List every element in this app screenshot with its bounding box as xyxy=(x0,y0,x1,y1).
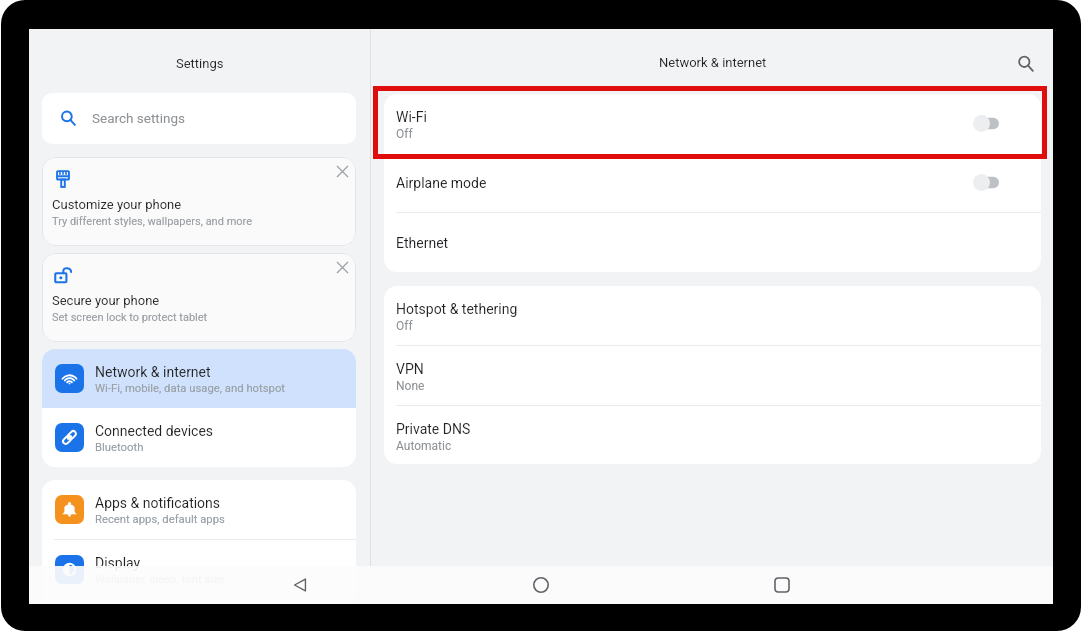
button[interactable]: Airplane mode xyxy=(384,153,1041,212)
staticText: Wi-Fi, mobile, data usage, and hotspot xyxy=(95,382,286,395)
button[interactable]: Connected devices xyxy=(42,408,356,467)
button[interactable]: Private DNS xyxy=(384,406,1041,464)
staticText: VPN xyxy=(396,361,424,377)
staticText: Search settings xyxy=(92,110,186,126)
button[interactable]: Network & internet xyxy=(42,349,356,408)
staticText: Apps & notifications xyxy=(95,495,221,511)
staticText: Try different styles, wallpapers, and mo… xyxy=(52,215,253,228)
staticText: Off xyxy=(396,127,413,141)
button[interactable]: Home xyxy=(521,566,561,604)
button[interactable]: Secure your phone xyxy=(42,253,356,342)
button[interactable]: Back xyxy=(280,566,320,604)
staticText: Set screen lock to protect tablet xyxy=(52,311,208,324)
button[interactable]: Display xyxy=(42,540,356,599)
staticText: Connected devices xyxy=(95,423,214,439)
staticText: Network & internet xyxy=(659,55,767,70)
staticText: Customize your phone xyxy=(52,197,182,212)
button[interactable]: Customize your phone xyxy=(42,157,356,246)
button[interactable]: Dismiss xyxy=(330,255,354,279)
button[interactable]: Search xyxy=(1008,46,1042,80)
button[interactable]: Hotspot & tethering xyxy=(384,286,1041,345)
button[interactable]: Wi-Fi xyxy=(384,94,1041,153)
button[interactable]: VPN xyxy=(384,346,1041,405)
staticText: Hotspot & tethering xyxy=(396,301,518,317)
button[interactable]: Recents xyxy=(762,566,802,604)
button[interactable]: Search settings xyxy=(42,93,356,144)
staticText: Display xyxy=(95,555,141,571)
staticText: Network & internet xyxy=(95,364,211,380)
button[interactable]: Apps & notifications xyxy=(42,480,356,539)
staticText: None xyxy=(396,379,425,393)
staticText: Wi-Fi xyxy=(396,109,427,125)
staticText: Secure your phone xyxy=(52,293,160,308)
staticText: Automatic xyxy=(396,439,452,453)
staticText: Settings xyxy=(176,56,224,71)
staticText: Recent apps, default apps xyxy=(95,513,225,526)
staticText: Off xyxy=(396,319,413,333)
button[interactable]: Ethernet xyxy=(384,213,1041,272)
staticText: Bluetooth xyxy=(95,441,144,454)
staticText: Private DNS xyxy=(396,421,471,437)
staticText: Airplane mode xyxy=(396,175,487,191)
button[interactable]: Dismiss xyxy=(330,159,354,183)
staticText: Ethernet xyxy=(396,235,449,251)
